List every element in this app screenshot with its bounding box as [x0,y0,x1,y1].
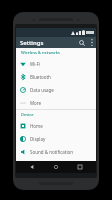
button[interactable]: Wi-Fi [16,57,96,70]
button[interactable]: Back [24,161,40,173]
button[interactable]: More [16,96,96,109]
button[interactable]: More options [87,37,96,48]
staticText: Display [30,136,46,142]
button[interactable]: Display [16,132,96,145]
button[interactable]: Data usage [16,83,96,96]
staticText: Data usage [30,87,54,93]
button[interactable]: Search [76,37,87,48]
button[interactable]: Home [16,119,96,132]
button[interactable]: Bluetooth [16,70,96,83]
staticText: Device [21,112,34,117]
staticText: More [30,100,42,106]
button[interactable]: Recent apps [72,161,88,173]
staticText: Wireless & networks [21,50,60,55]
staticText: Settings [20,39,44,47]
staticText: Wi-Fi [30,61,41,67]
button[interactable]: Sound & notification [16,145,96,158]
button[interactable]: Home [48,161,64,173]
staticText: Home [30,123,43,129]
staticText: Bluetooth [30,74,51,80]
staticText: Sound & notification [30,149,74,155]
